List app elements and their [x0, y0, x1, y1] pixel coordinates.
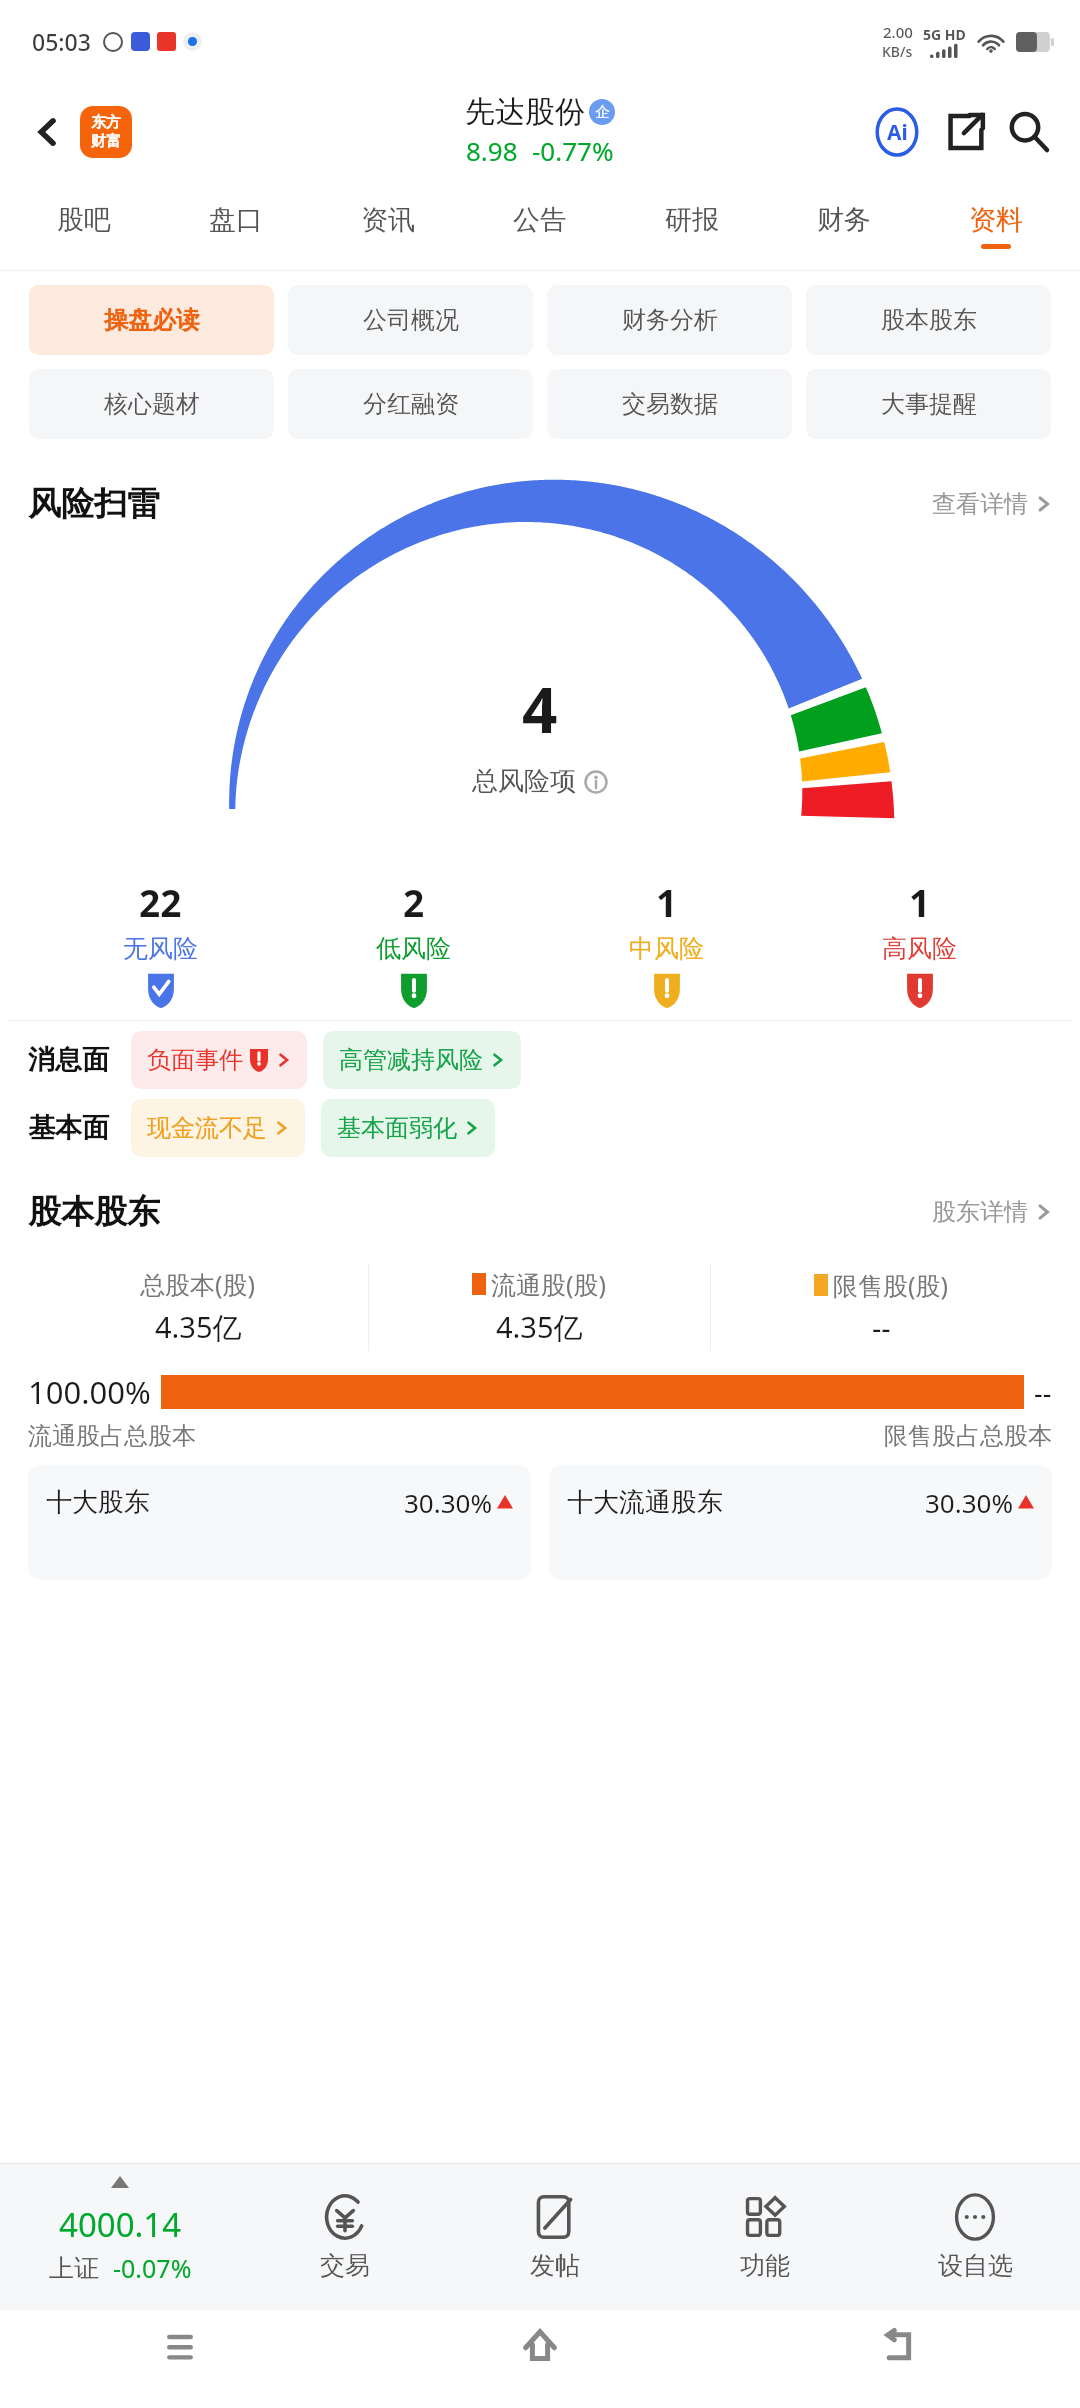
staticText: 现金流不足: [147, 1113, 267, 1143]
staticText: 发帖: [530, 2250, 580, 2281]
staticText: 股本股东: [881, 305, 977, 335]
button[interactable]: 2: [287, 877, 540, 1008]
staticText: 功能: [740, 2250, 790, 2281]
button[interactable]: 发帖: [450, 2164, 660, 2310]
button[interactable]: 高管减持风险: [323, 1031, 521, 1089]
staticText: 无风险: [123, 933, 198, 964]
staticText: 设自选: [938, 2250, 1013, 2281]
button[interactable]: 公司概况: [288, 285, 533, 355]
button[interactable]: 十大股东: [28, 1465, 531, 1580]
button[interactable]: Back: [18, 102, 78, 162]
staticText: 高管减持风险: [339, 1045, 483, 1075]
button[interactable]: 核心题材: [29, 369, 274, 439]
button[interactable]: 4000.14: [0, 2190, 240, 2285]
button[interactable]: 负面事件: [131, 1031, 307, 1089]
button[interactable]: 公告: [464, 182, 616, 270]
button[interactable]: Back: [720, 2310, 1080, 2408]
staticText: 公告: [513, 203, 567, 237]
button[interactable]: 操盘必读: [29, 285, 274, 355]
staticText: Ai: [887, 118, 908, 147]
staticText: 股本股东: [28, 1191, 160, 1233]
button[interactable]: 股东详情: [932, 1197, 1052, 1227]
button[interactable]: Recents: [0, 2310, 360, 2408]
button[interactable]: 现金流不足: [131, 1099, 305, 1157]
button[interactable]: 交易: [240, 2164, 450, 2310]
staticText: 股吧: [57, 203, 111, 237]
staticText: 4: [522, 667, 558, 751]
staticText: 中风险: [629, 933, 704, 964]
button[interactable]: 交易数据: [547, 369, 792, 439]
staticText: 限售股占总股本: [884, 1421, 1052, 1451]
button[interactable]: 资讯: [312, 182, 464, 270]
staticText: KB/s: [882, 42, 913, 61]
button[interactable]: 大事提醒: [806, 369, 1051, 439]
staticText: 企: [595, 103, 610, 122]
staticText: 1: [656, 877, 678, 927]
staticText: 30.30%: [404, 1485, 493, 1520]
staticText: 财富: [91, 132, 121, 151]
staticText: 4000.14: [59, 2202, 182, 2247]
staticText: 限售股(股): [833, 1268, 949, 1302]
staticText: 研报: [665, 203, 719, 237]
staticText: -0.07%: [113, 2251, 192, 2285]
staticText: 交易数据: [622, 389, 718, 419]
button[interactable]: AI: [868, 103, 926, 161]
staticText: 公司概况: [363, 305, 459, 335]
staticText: 05:03: [32, 26, 91, 57]
button[interactable]: 分红融资: [288, 369, 533, 439]
staticText: 流通股占总股本: [28, 1421, 196, 1451]
staticText: 4.35亿: [496, 1307, 583, 1347]
staticText: 风险扫雷: [28, 483, 160, 525]
button[interactable]: 盘口: [160, 182, 312, 270]
button[interactable]: 研报: [616, 182, 768, 270]
staticText: 2.00: [883, 22, 913, 42]
staticText: 22: [139, 877, 182, 927]
button[interactable]: 资料: [920, 182, 1072, 270]
staticText: 消息面: [28, 1043, 109, 1077]
button[interactable]: Search: [1000, 103, 1058, 161]
staticText: 十大流通股东: [567, 1486, 723, 1519]
staticText: 8.98: [466, 133, 518, 168]
button[interactable]: 查看详情: [932, 489, 1052, 519]
button[interactable]: Share: [936, 103, 994, 161]
staticText: 4.35亿: [155, 1307, 242, 1347]
staticText: 股东详情: [932, 1197, 1028, 1227]
staticText: 资讯: [361, 203, 415, 237]
staticText: 盘口: [209, 203, 263, 237]
staticText: 财务: [817, 203, 871, 237]
staticText: 负面事件: [147, 1045, 243, 1075]
staticText: 30.30%: [925, 1485, 1014, 1520]
button[interactable]: 基本面弱化: [321, 1099, 495, 1157]
staticText: 核心题材: [104, 389, 200, 419]
staticText: 总风险项: [472, 765, 576, 798]
staticText: 1: [909, 877, 931, 927]
button[interactable]: 设自选: [870, 2164, 1080, 2310]
staticText: 大事提醒: [881, 389, 977, 419]
button[interactable]: 东方财富: [80, 106, 132, 158]
staticText: 十大股东: [46, 1486, 150, 1519]
staticText: --: [1034, 1374, 1052, 1411]
staticText: 资料: [969, 203, 1023, 237]
staticText: 操盘必读: [104, 305, 200, 335]
staticText: 查看详情: [932, 489, 1028, 519]
staticText: 低风险: [376, 933, 451, 964]
button[interactable]: 1: [540, 877, 793, 1008]
button[interactable]: 股吧: [8, 182, 160, 270]
staticText: 高风险: [882, 933, 957, 964]
staticText: -0.77%: [532, 133, 614, 168]
staticText: 流通股(股): [491, 1267, 607, 1301]
staticText: 2: [403, 877, 425, 927]
button[interactable]: 财务分析: [547, 285, 792, 355]
button[interactable]: Home: [360, 2310, 720, 2408]
staticText: 财务分析: [622, 305, 718, 335]
button[interactable]: 1: [793, 877, 1046, 1008]
staticText: 上证: [49, 2253, 99, 2284]
button[interactable]: 22: [34, 877, 287, 1008]
button[interactable]: 股本股东: [806, 285, 1051, 355]
button[interactable]: 十大流通股东: [549, 1465, 1052, 1580]
button[interactable]: 财务: [768, 182, 920, 270]
staticText: 基本面: [28, 1111, 109, 1145]
staticText: 总股本(股): [140, 1267, 256, 1301]
staticText: 基本面弱化: [337, 1113, 457, 1143]
button[interactable]: 功能: [660, 2164, 870, 2310]
